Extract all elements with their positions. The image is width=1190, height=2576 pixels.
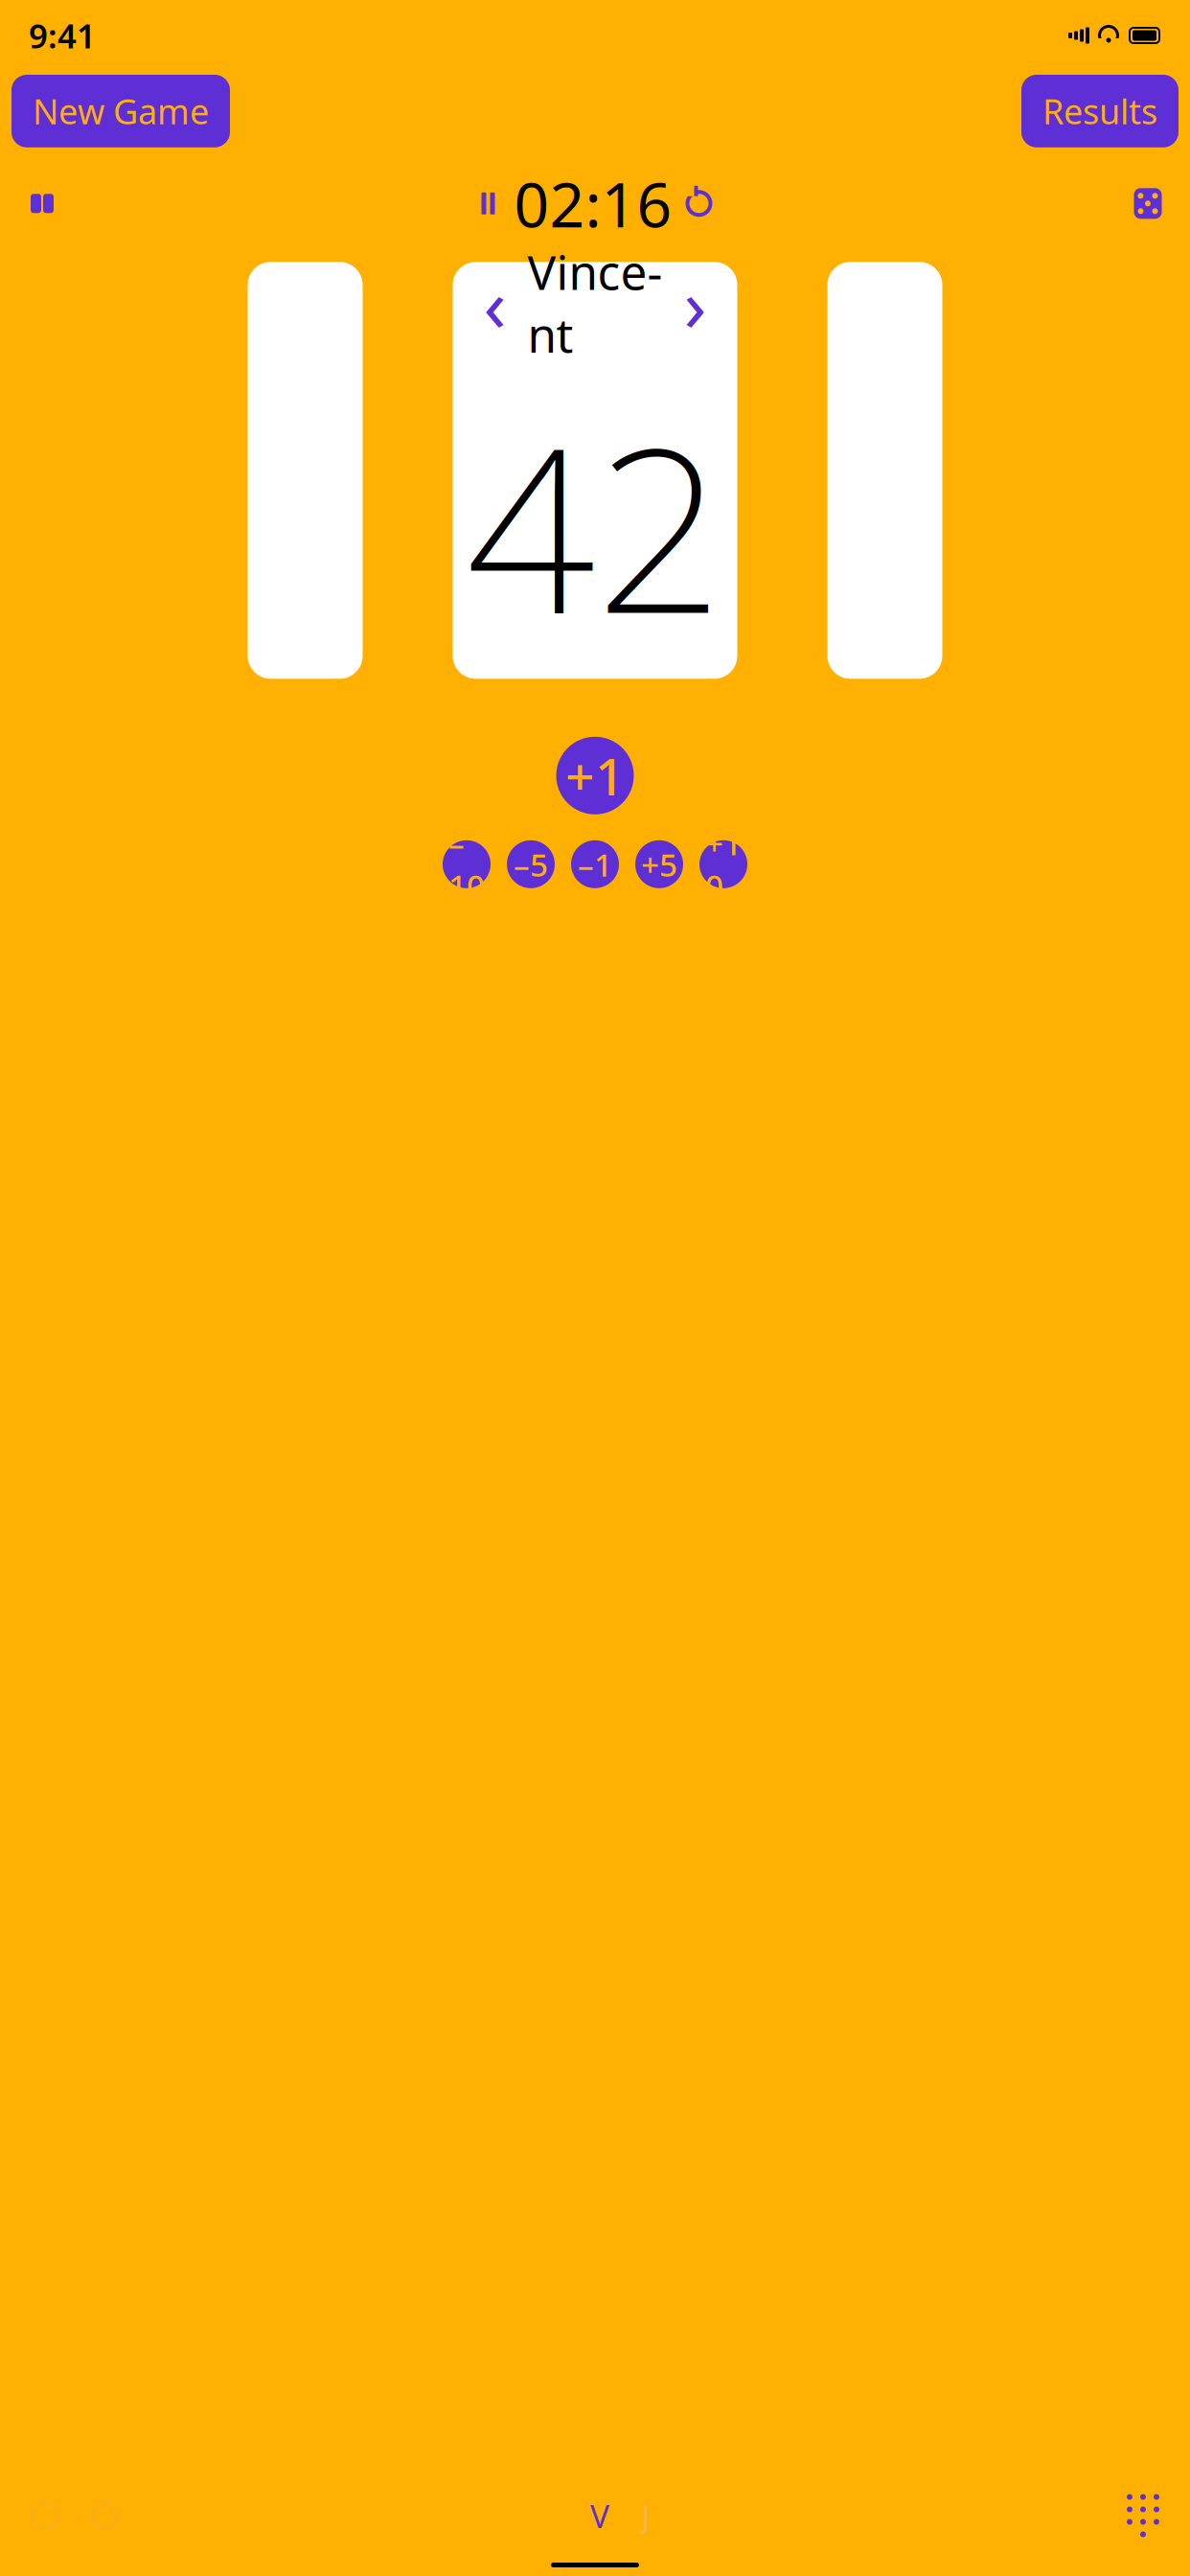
button[interactable]: J [633,2499,658,2532]
button[interactable]: V [587,2499,612,2532]
staticText: Results [1042,88,1157,134]
staticText: –5 [514,843,548,885]
staticText: –1 [578,843,612,885]
staticText: +5 [641,843,677,885]
button[interactable]: +1 [556,737,634,814]
button[interactable]: New Game [11,75,230,147]
button[interactable]: Roll dice [1121,182,1175,225]
staticText: ‹ [483,254,506,352]
button[interactable]: Results [1021,75,1179,147]
button[interactable]: Next player [674,274,716,332]
button[interactable]: Reset timer [680,183,718,224]
button[interactable]: Undo [21,2495,69,2537]
staticText: Vincent [527,240,663,366]
button[interactable]: –10 [443,840,491,888]
staticText: 02:16 [514,163,672,244]
button[interactable]: Pause timer [472,184,504,223]
staticText: › [684,254,707,352]
staticText: J [641,2494,650,2537]
button[interactable]: –1 [571,840,619,888]
button[interactable]: Previous player [474,274,516,332]
staticText: 9:41 [29,13,96,57]
staticText: V [590,2494,609,2537]
button[interactable]: –5 [507,840,555,888]
staticText: +1 [565,742,625,810]
button[interactable]: +10 [699,840,747,888]
staticText: New Game [33,88,209,134]
button[interactable]: Redo [80,2495,128,2537]
button[interactable]: Rules [15,182,69,225]
button[interactable]: +5 [635,840,683,888]
staticText: +10 [705,822,742,907]
staticText: –10 [448,822,485,907]
staticText: 42 [466,373,724,676]
button[interactable]: Enter score [1117,2494,1169,2538]
